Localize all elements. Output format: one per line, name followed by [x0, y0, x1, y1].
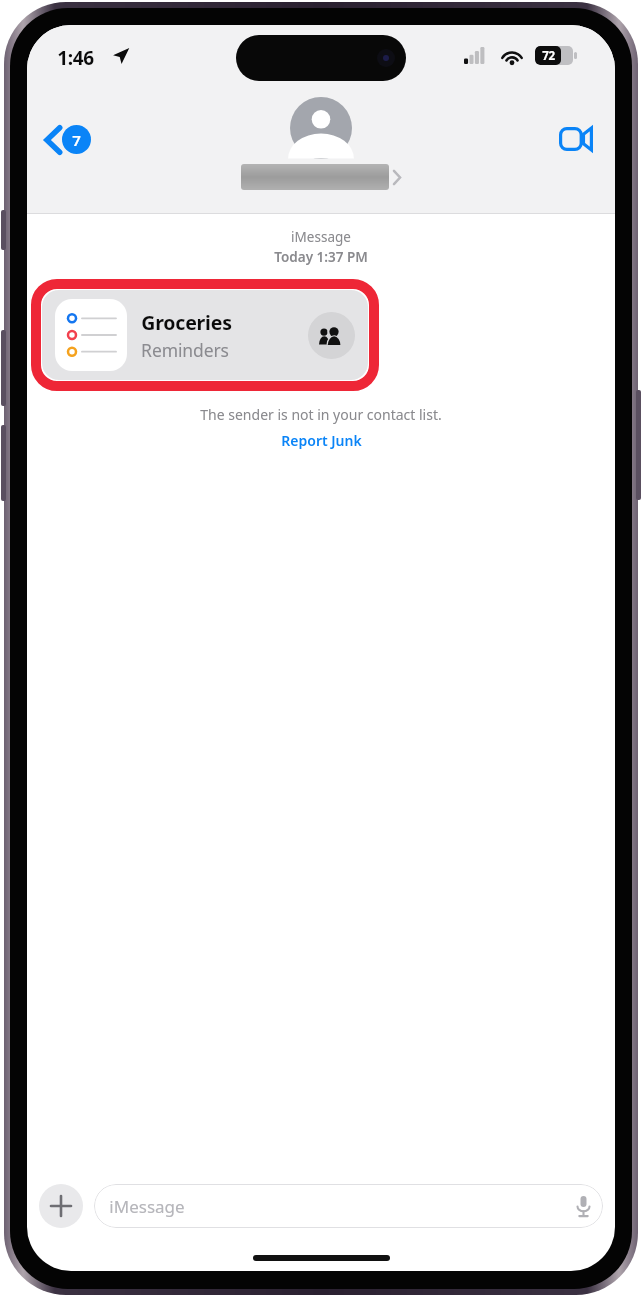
- staticText: Today 1:37 PM: [274, 248, 368, 266]
- button[interactable]: Back, 7 unread: [37, 117, 99, 162]
- staticText: Report Junk: [281, 431, 362, 450]
- other: Dictate: [576, 1195, 591, 1217]
- button[interactable]: Groceries: [42, 290, 368, 380]
- staticText: iMessage: [291, 228, 351, 246]
- staticText: 7: [72, 130, 81, 150]
- button[interactable]: Report Junk: [275, 429, 368, 452]
- staticText: 1:46: [57, 45, 94, 71]
- staticText: The sender is not in your contact list.: [200, 405, 442, 424]
- button[interactable]: iMessage: [94, 1184, 603, 1228]
- staticText: Reminders: [141, 338, 229, 362]
- button[interactable]: Add attachment: [39, 1184, 83, 1228]
- staticText: iMessage: [109, 1195, 185, 1218]
- button[interactable]: FaceTime video call: [549, 117, 603, 161]
- button[interactable]: Shared with people: [308, 312, 355, 359]
- staticText: Groceries: [141, 309, 232, 336]
- button[interactable]: Contact details: [241, 97, 401, 190]
- staticText: 72: [542, 48, 555, 64]
